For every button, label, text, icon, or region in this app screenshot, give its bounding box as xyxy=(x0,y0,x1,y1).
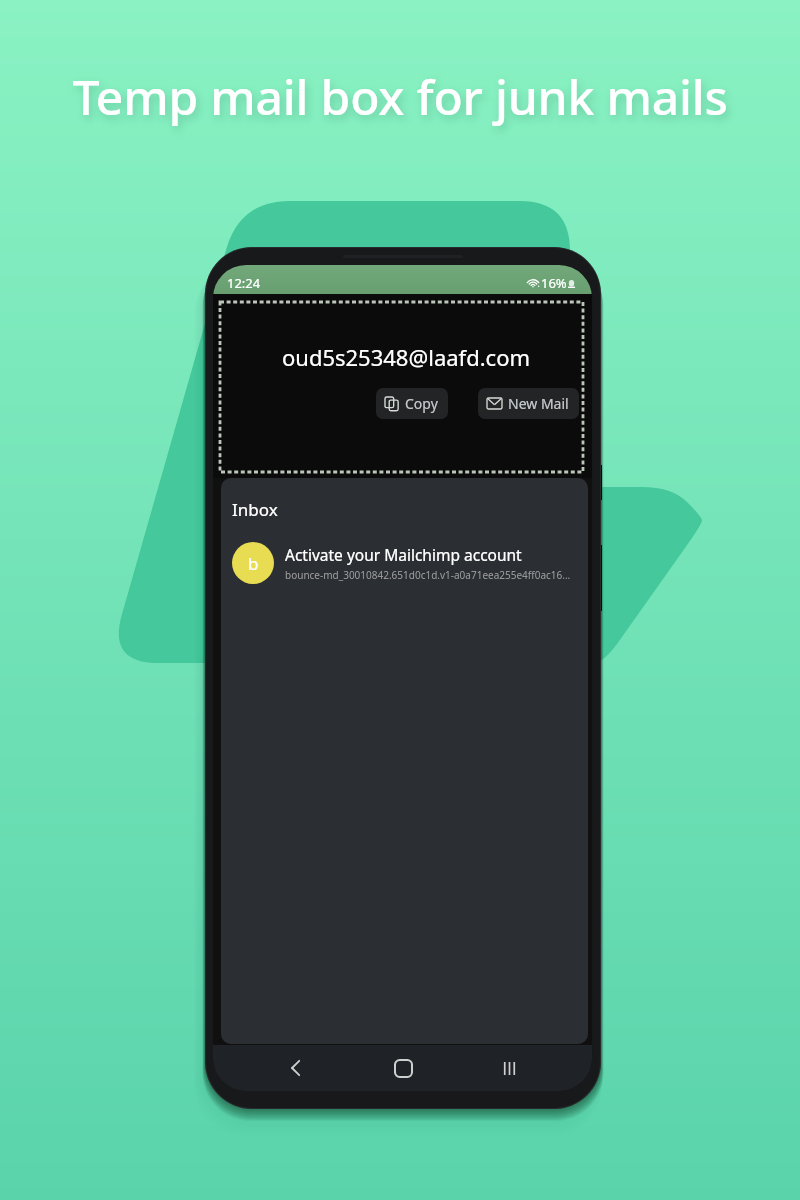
staticText: Inbox xyxy=(232,498,278,521)
staticText: 16% xyxy=(541,274,567,292)
button[interactable]: Home xyxy=(380,1045,426,1091)
staticText: oud5s25348@laafd.com xyxy=(233,342,579,372)
button[interactable]: Copy xyxy=(376,388,448,419)
staticText: Temp mail box for junk mails xyxy=(0,64,800,129)
staticText: Copy xyxy=(405,394,438,413)
staticText: 12:24 xyxy=(227,274,261,292)
staticText: New Mail xyxy=(508,394,569,413)
button[interactable]: Recent apps xyxy=(486,1045,532,1091)
staticText: Activate your Mailchimp account xyxy=(285,544,522,565)
button[interactable]: New Mail xyxy=(478,388,579,419)
button[interactable]: Back xyxy=(273,1045,319,1091)
staticText: b xyxy=(248,552,259,575)
button[interactable]: b xyxy=(221,538,588,588)
staticText: bounce-md_30010842.651d0c1d.v1-a0a71eea2… xyxy=(285,568,571,582)
